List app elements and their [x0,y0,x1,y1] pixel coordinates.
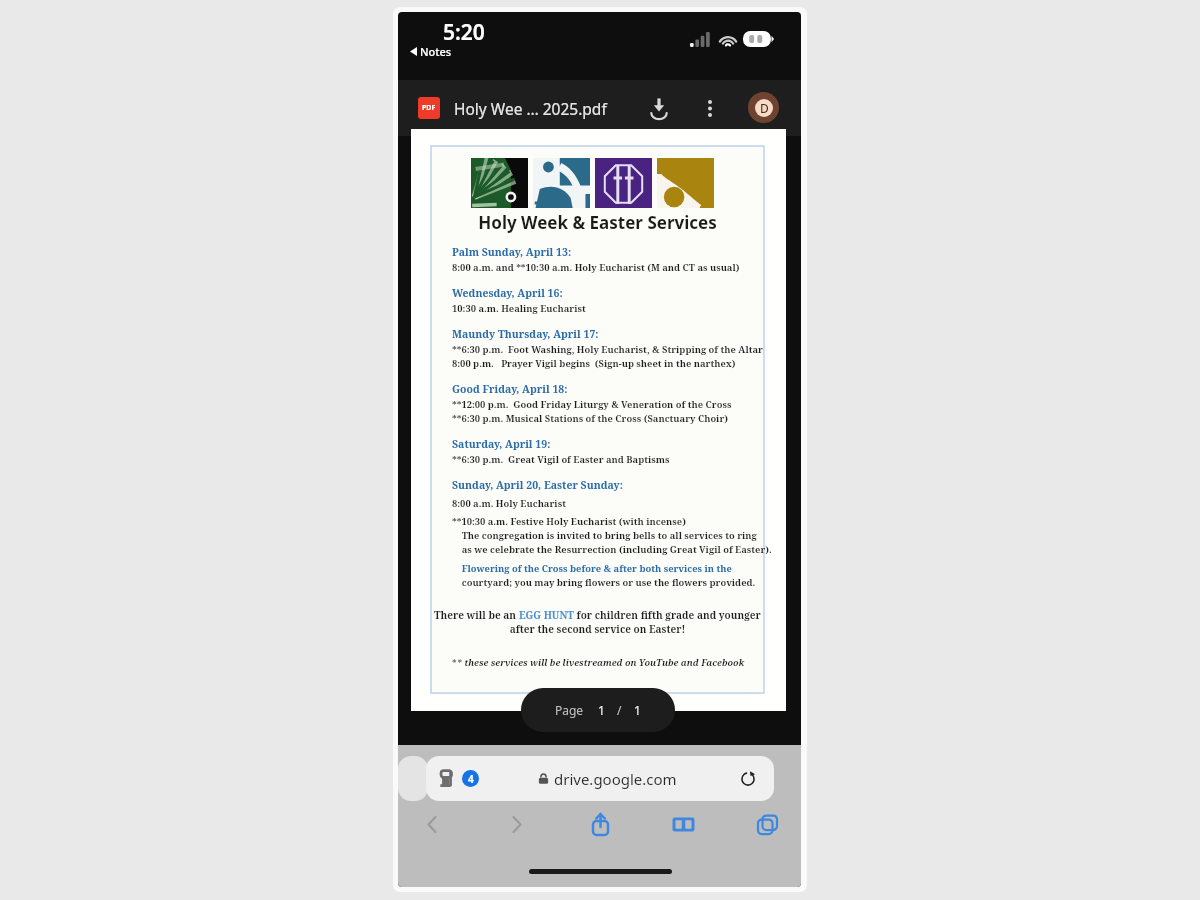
staticText: **12:00 p.m. Good Friday Liturgy & Vener… [452,398,732,412]
button[interactable]: Bookmarks [655,804,711,844]
staticText: Saturday, April 19: [452,437,551,453]
staticText: / [617,702,622,718]
staticText: There will be an [434,608,519,622]
button[interactable]: More options [693,91,727,125]
staticText: Palm Sunday, April 13: [452,245,572,261]
staticText: D [760,100,769,116]
staticText: PDF [422,103,436,113]
staticText: 8:00 p.m. Prayer Vigil begins (Sign-up s… [452,357,736,371]
staticText: for children fifth grade and younger [574,608,761,622]
staticText: 8:00 a.m. and **10:30 a.m. Holy Eucharis… [452,261,740,275]
staticText: **6:30 p.m. Musical Stations of the Cros… [452,412,729,426]
staticText: **6:30 p.m. Great Vigil of Easter and Ba… [452,453,670,467]
staticText: 8:00 a.m. Holy Eucharist [452,497,566,511]
staticText: 10:30 a.m. Healing Eucharist [452,302,586,316]
button[interactable]: Share [572,804,628,844]
button[interactable]: PDF page 1 [411,129,786,711]
staticText: EGG HUNT [519,608,574,622]
staticText: **6:30 p.m. Foot Washing, Holy Eucharist… [452,343,763,357]
button[interactable]: Forward [488,804,544,844]
staticText: 4 [468,772,474,786]
staticText: Holy Week & Easter Services [431,211,764,234]
button[interactable]: Back to Notes [410,44,452,59]
staticText: Wednesday, April 16: [452,286,563,302]
staticText: Maundy Thursday, April 17: [452,327,599,343]
button[interactable]: Account [748,92,779,123]
staticText: Holy Wee … 2025.pdf [454,98,607,119]
staticText: Good Friday, April 18: [452,382,568,398]
button[interactable]: Tabs [739,804,795,844]
button[interactable]: Download [642,91,676,125]
staticText: courtyard; you may bring flowers or use … [452,576,756,590]
staticText: after the second service on Easter! [431,622,764,636]
button[interactable]: Reload [736,767,760,791]
staticText: Sunday, April 20, Easter Sunday: [452,478,623,494]
button[interactable]: 4 [426,756,774,801]
staticText: 5:20 [443,18,485,47]
staticText: **10:30 a.m. Festive Holy Eucharist (wit… [452,515,686,529]
staticText: Page [555,702,584,718]
staticText: drive.google.com [554,769,677,789]
button[interactable]: Back [404,804,460,844]
button[interactable]: PDF [418,80,607,136]
button[interactable]: Page [521,688,675,732]
staticText: as we celebrate the Resurrection (includ… [452,543,772,557]
staticText: Flowering of the Cross before & after bo… [452,562,732,576]
staticText: 1 [634,702,641,718]
staticText: Notes [420,44,452,59]
staticText: 1 [598,702,605,718]
staticText: The congregation is invited to bring bel… [452,529,757,543]
staticText: ** these services will be livestreamed o… [431,656,764,668]
